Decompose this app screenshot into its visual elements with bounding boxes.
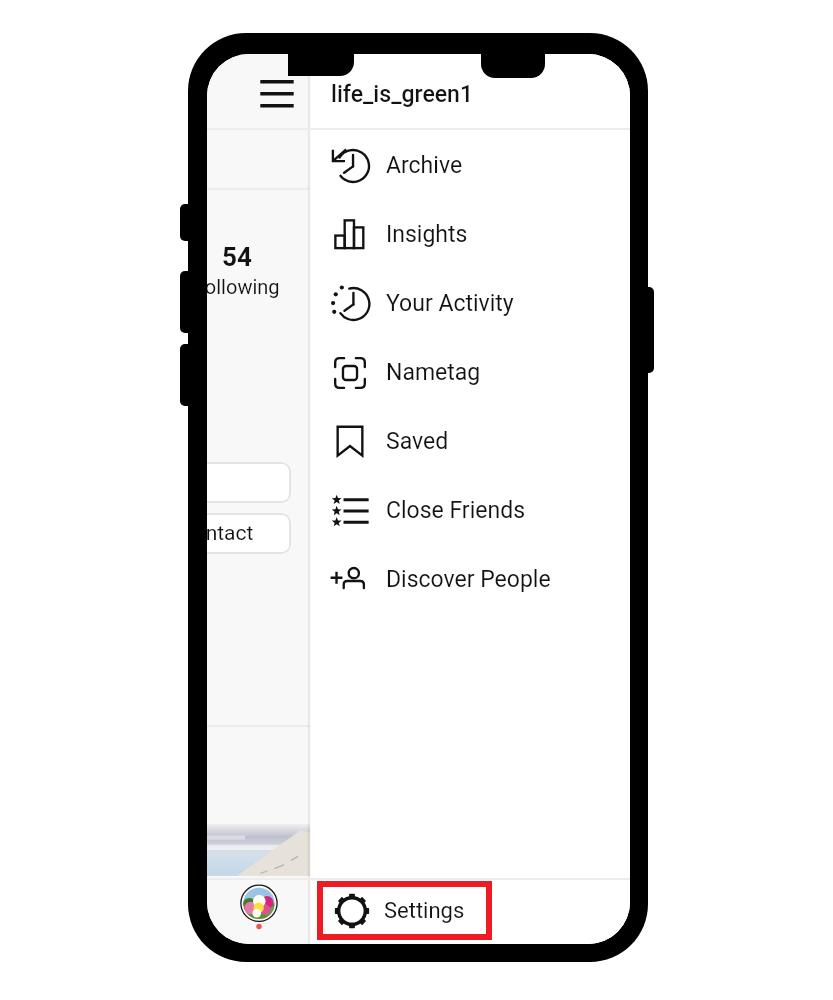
staticText: Archive	[386, 152, 463, 179]
staticText: 54	[222, 242, 252, 272]
button[interactable]: Saved	[310, 407, 630, 476]
button[interactable]: Profile picture	[231, 884, 287, 944]
button[interactable]	[207, 513, 291, 554]
staticText: life_is_green1	[331, 81, 473, 108]
button[interactable]: Nametag	[310, 338, 630, 407]
button[interactable]: Insights	[310, 200, 630, 269]
staticText: Insights	[386, 221, 468, 248]
button[interactable]: Discover People	[310, 545, 630, 614]
staticText: Settings	[384, 898, 465, 924]
button[interactable]: Close Friends	[310, 476, 630, 545]
staticText: Discover People	[386, 566, 551, 593]
button[interactable]: Settings	[317, 881, 492, 940]
staticText: Close Friends	[386, 497, 525, 524]
staticText: Saved	[386, 428, 449, 455]
button[interactable]: Your Activity	[310, 269, 630, 338]
button[interactable]: Archive	[310, 131, 630, 200]
button[interactable]	[207, 462, 291, 503]
button[interactable]: Open menu	[248, 67, 306, 119]
staticText: Following	[207, 275, 280, 298]
staticText: Contact	[207, 521, 254, 546]
staticText: Nametag	[386, 359, 481, 386]
staticText: Your Activity	[386, 290, 514, 317]
